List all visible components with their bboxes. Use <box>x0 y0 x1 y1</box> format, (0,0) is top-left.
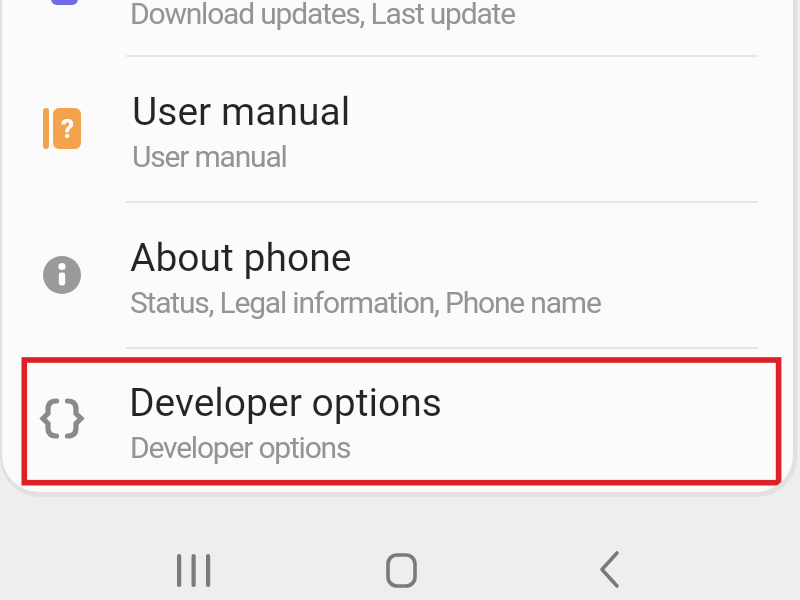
staticText: Developer options <box>130 430 351 465</box>
staticText: Download updates, Last update <box>130 0 515 31</box>
button[interactable] <box>160 540 230 600</box>
button[interactable]: ? <box>43 108 81 149</box>
staticText: Status, Legal information, Phone name <box>130 285 601 320</box>
button[interactable] <box>585 540 635 600</box>
staticText: Developer options <box>129 380 442 426</box>
staticText: ? <box>61 114 74 144</box>
button[interactable] <box>2 212 793 347</box>
button[interactable] <box>2 358 793 486</box>
button[interactable] <box>2 66 793 201</box>
staticText: User manual <box>132 139 287 174</box>
button[interactable] <box>51 0 78 5</box>
button[interactable] <box>43 256 81 294</box>
staticText: About phone <box>130 235 352 281</box>
button[interactable] <box>370 540 430 600</box>
staticText: User manual <box>132 89 351 135</box>
